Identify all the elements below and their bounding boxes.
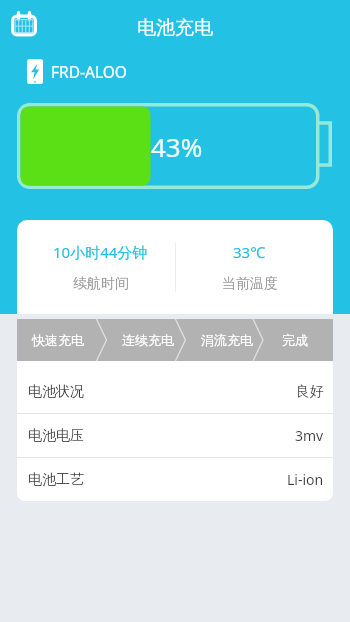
button[interactable]: 10小时44分钟 — [26, 220, 175, 314]
staticText: 良好 — [296, 383, 324, 401]
staticText: 10小时44分钟 — [53, 242, 148, 262]
staticText: 33℃ — [233, 242, 266, 262]
staticText: 电池电压 — [28, 427, 84, 445]
staticText: 当前温度 — [222, 275, 278, 293]
button[interactable]: 涓流充电 — [198, 319, 256, 361]
staticText: 续航时间 — [73, 275, 129, 293]
staticText: 3mv — [295, 426, 324, 445]
button[interactable]: 电池电压 — [17, 414, 333, 457]
staticText: 电池工艺 — [28, 471, 84, 489]
button[interactable]: 完成 — [256, 319, 333, 361]
staticText: 连续充电 — [122, 332, 174, 348]
button[interactable]: 快速充电 — [17, 319, 98, 361]
staticText: 电池状况 — [28, 383, 84, 401]
staticText: FRD-ALOO — [51, 61, 127, 82]
staticText: 电池充电 — [137, 16, 213, 40]
staticText: 完成 — [282, 332, 308, 348]
staticText: 快速充电 — [32, 332, 84, 348]
staticText: 43% — [151, 129, 203, 164]
button[interactable]: 电池工艺 — [17, 458, 333, 501]
button[interactable]: 电池状况 — [17, 370, 333, 413]
staticText: 涓流充电 — [201, 332, 253, 348]
button[interactable]: Calendar — [4, 4, 44, 44]
button[interactable]: 33℃ — [175, 220, 324, 314]
staticText: Li-ion — [287, 470, 324, 489]
button[interactable]: 连续充电 — [98, 319, 198, 361]
